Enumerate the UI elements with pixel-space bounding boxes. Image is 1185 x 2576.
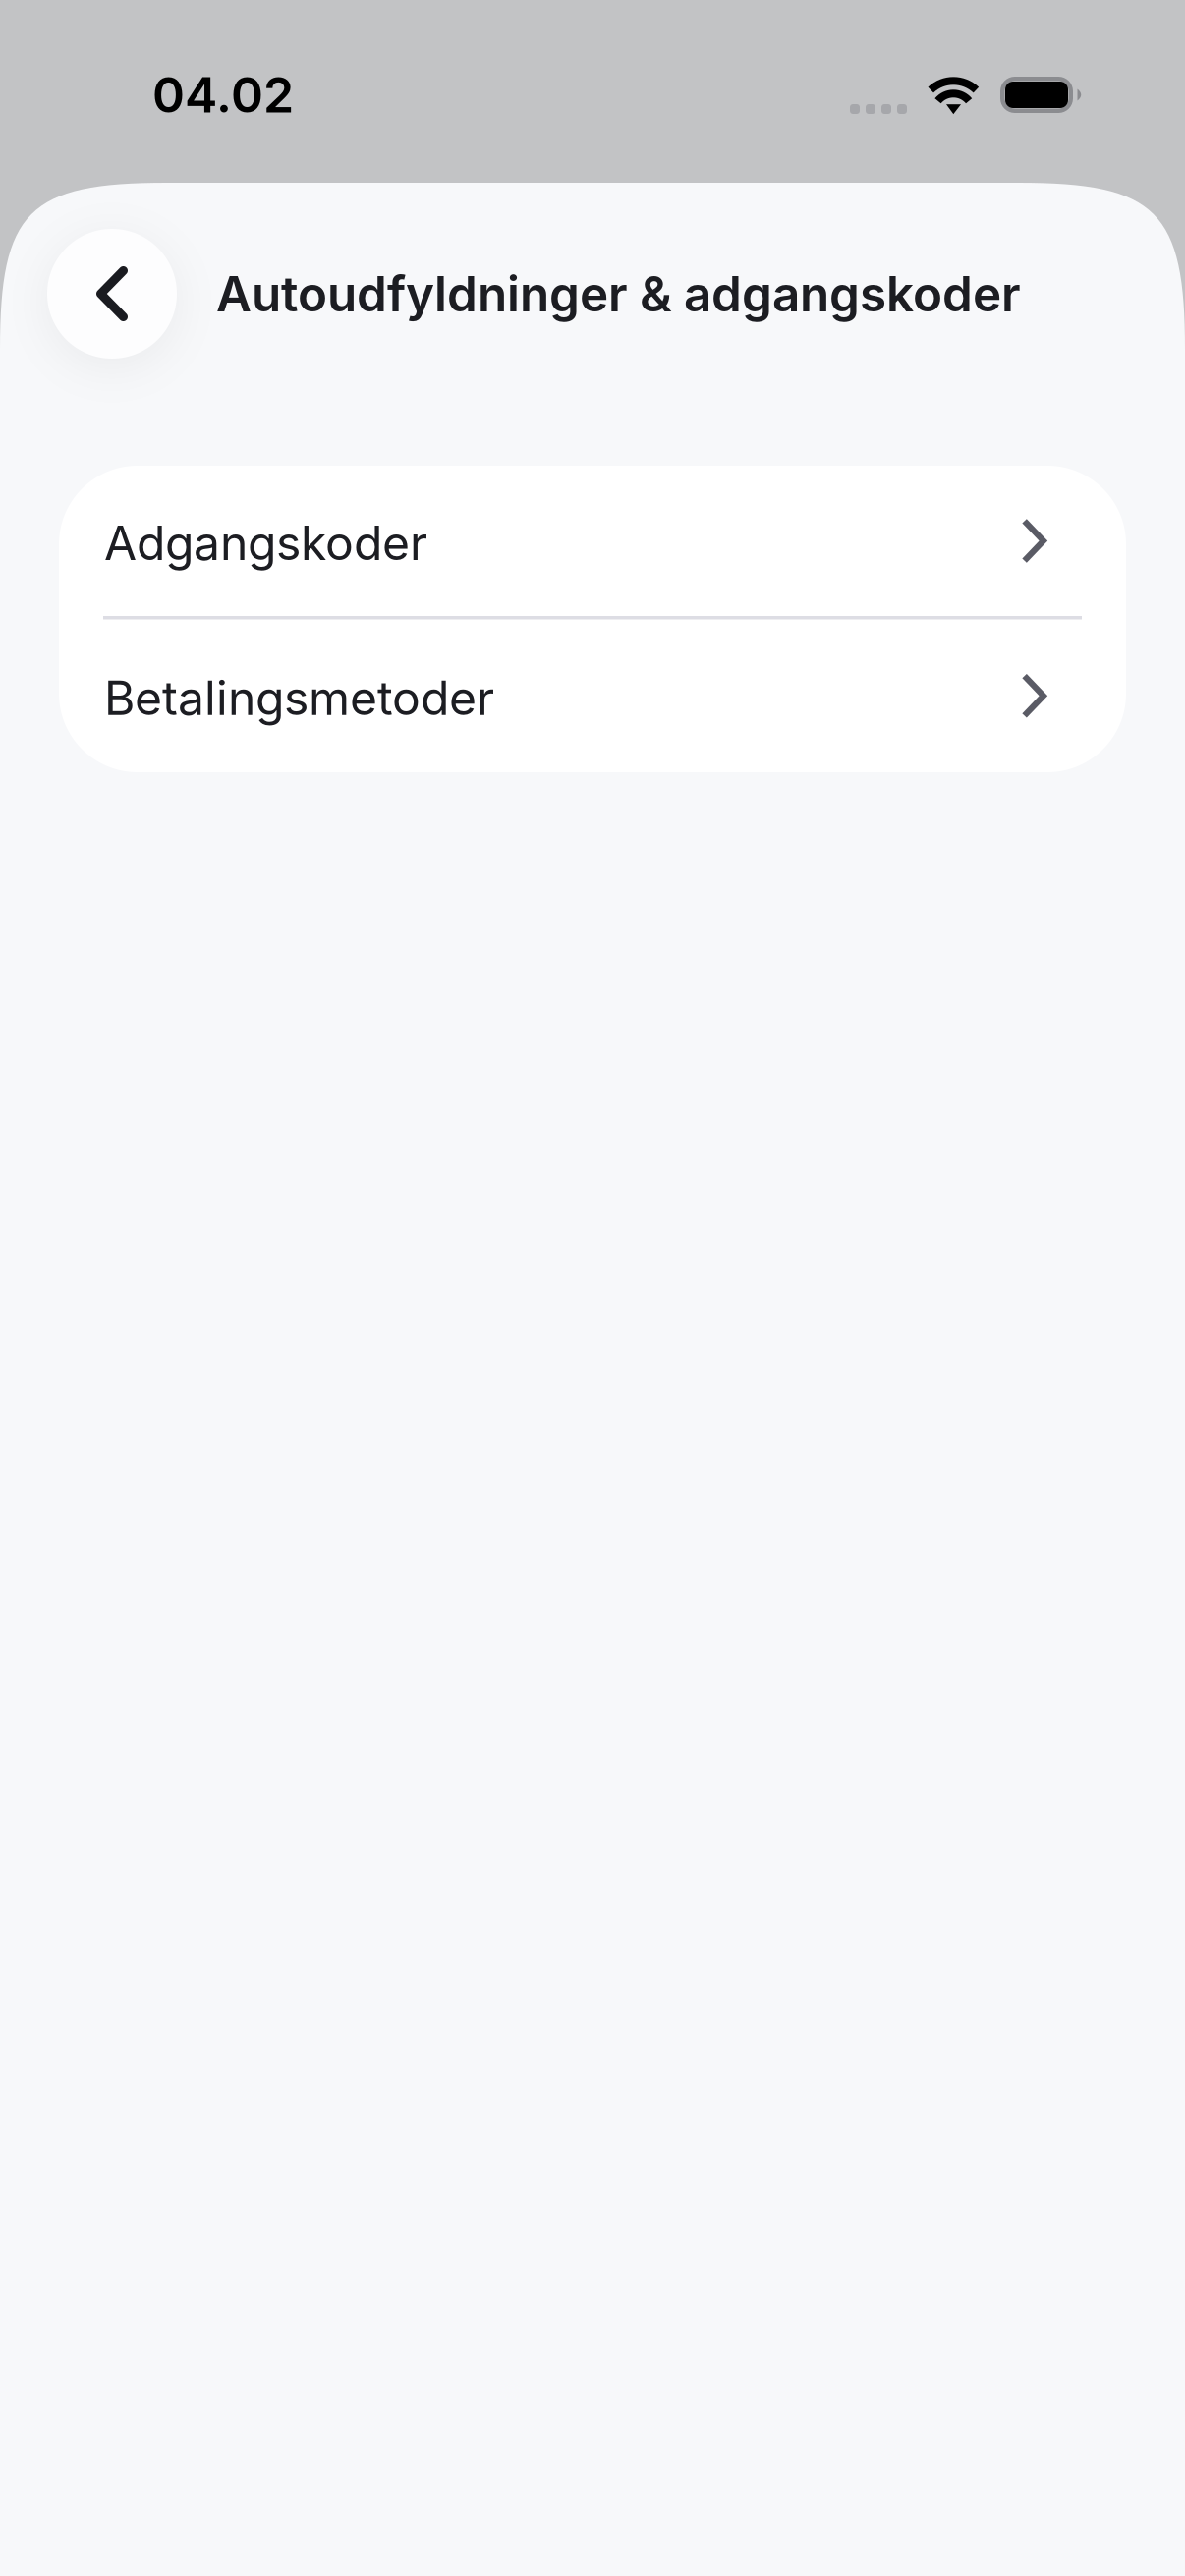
staticText: Betalingsmetoder	[104, 669, 494, 726]
button[interactable]: Adgangskoder	[59, 466, 1126, 616]
staticText: 04.02	[152, 65, 294, 124]
button[interactable]: Back	[47, 229, 177, 359]
staticText: Adgangskoder	[104, 514, 427, 571]
button[interactable]: Betalingsmetoder	[59, 619, 1126, 772]
staticText: Autoudfyldninger & adgangskoder	[216, 264, 1021, 323]
